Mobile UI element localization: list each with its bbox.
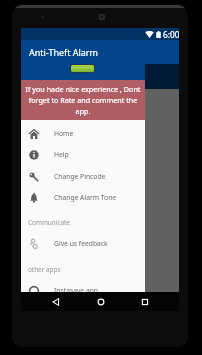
staticText: If you hade nice experience , Dont forge… — [25, 84, 141, 116]
staticText: Instasave app — [54, 286, 99, 292]
button[interactable]: Home — [91, 292, 110, 311]
button[interactable]: Advertisement — [70, 64, 95, 73]
button[interactable]: Recent apps — [135, 292, 154, 311]
staticText: Communicate — [28, 218, 70, 227]
button[interactable]: Back — [46, 292, 65, 311]
button[interactable]: Change Pincode — [21, 166, 145, 187]
button[interactable]: Give us feedback — [21, 233, 145, 254]
button[interactable]: If you hade nice experience , Dont forge… — [21, 80, 145, 120]
staticText: Home — [54, 129, 74, 138]
button[interactable]: Anti-Theft Alarm — [21, 40, 179, 64]
staticText: Change Alarm Tone — [54, 193, 117, 202]
staticText: Anti-Theft Alarm — [29, 46, 99, 58]
staticText: Give us feedback — [54, 239, 108, 248]
staticText: 6:00 — [163, 29, 179, 40]
button[interactable]: Instasave app — [21, 280, 145, 292]
button[interactable]: Change Alarm Tone — [21, 187, 145, 208]
button[interactable]: Home — [21, 123, 145, 144]
button[interactable]: Help — [21, 144, 145, 165]
staticText: Help — [54, 150, 69, 159]
staticText: Change Pincode — [54, 172, 106, 181]
staticText: other apps — [28, 265, 61, 274]
